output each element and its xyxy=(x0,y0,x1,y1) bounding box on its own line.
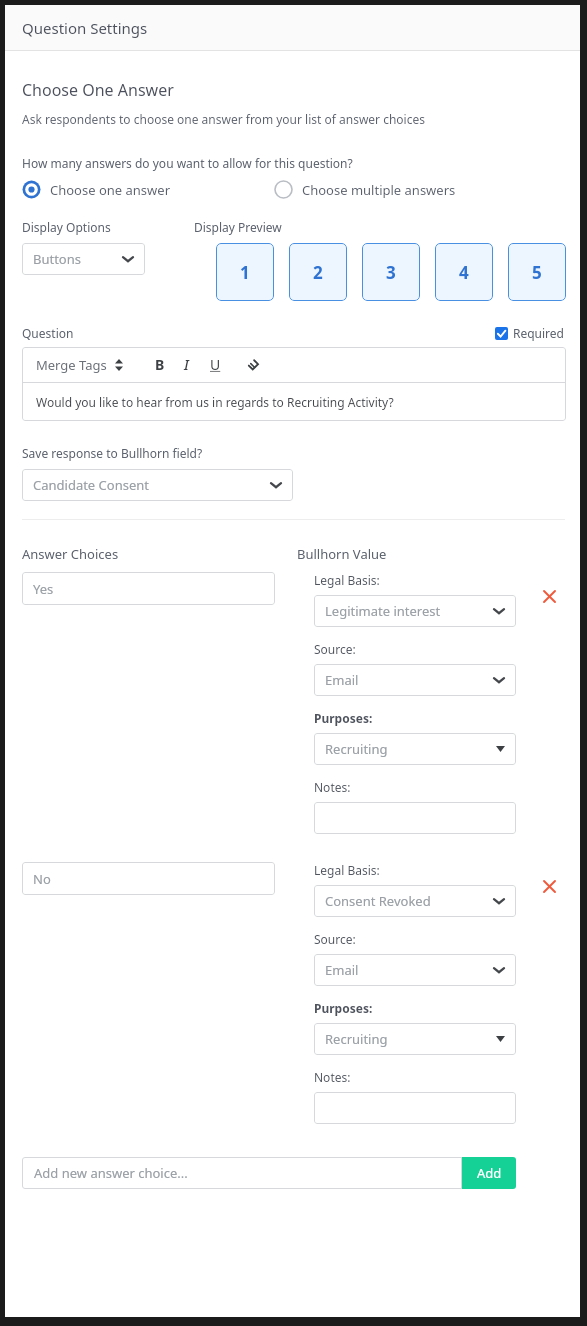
staticText: Source: xyxy=(314,931,356,947)
staticText: Choose multiple answers xyxy=(302,181,456,199)
staticText: 5 xyxy=(532,261,542,284)
staticText: Add new answer choice... xyxy=(34,1164,188,1182)
staticText: Yes xyxy=(33,580,54,598)
staticText: Required xyxy=(513,325,564,341)
staticText: Source: xyxy=(314,641,356,657)
staticText: Consent Revoked xyxy=(325,892,431,910)
staticText: 3 xyxy=(386,261,396,284)
button[interactable]: Bold xyxy=(151,355,169,374)
button[interactable]: Source xyxy=(314,664,516,696)
staticText: Recruiting xyxy=(325,740,388,758)
button[interactable]: 5 xyxy=(508,243,566,301)
staticText: Purposes: xyxy=(314,710,373,726)
staticText: Display Options xyxy=(22,219,111,235)
staticText: Recruiting xyxy=(325,1030,388,1048)
staticText: Purposes: xyxy=(314,1000,373,1016)
button[interactable]: Legal basis xyxy=(314,595,516,627)
staticText: Email xyxy=(325,961,359,979)
button[interactable]: Bullhorn field xyxy=(22,469,293,501)
button[interactable]: Source xyxy=(314,954,516,986)
staticText: Question Settings xyxy=(22,18,148,38)
button[interactable]: Purposes xyxy=(314,1023,516,1055)
button[interactable]: Merge Tags xyxy=(36,356,123,374)
staticText: Display Preview xyxy=(194,219,282,235)
staticText: No xyxy=(33,870,51,888)
button[interactable]: Remove answer choice xyxy=(539,876,559,896)
staticText: Email xyxy=(325,671,359,689)
button[interactable]: Legal basis xyxy=(314,885,516,917)
button[interactable]: Notes xyxy=(314,802,516,834)
staticText: Add xyxy=(477,1164,502,1182)
button[interactable]: Choose one answer xyxy=(22,180,171,199)
button[interactable]: Italic xyxy=(180,355,193,374)
staticText: Ask respondents to choose one answer fro… xyxy=(22,111,425,127)
button[interactable]: Would you like to hear from us in regard… xyxy=(22,383,566,421)
staticText: Bullhorn Value xyxy=(297,545,387,563)
button[interactable]: Add xyxy=(462,1157,516,1189)
button[interactable]: Display options xyxy=(22,243,145,275)
button[interactable]: Choose multiple answers xyxy=(274,180,456,199)
button[interactable]: Required xyxy=(495,325,564,341)
staticText: Question xyxy=(22,325,74,341)
staticText: Legal Basis: xyxy=(314,862,380,878)
staticText: B xyxy=(155,355,165,374)
staticText: U xyxy=(210,355,221,374)
button[interactable]: Add new answer choice... xyxy=(22,1157,462,1189)
staticText: Would you like to hear from us in regard… xyxy=(36,394,394,410)
staticText: Candidate Consent xyxy=(33,476,149,494)
staticText: Buttons xyxy=(33,250,81,268)
staticText: Save response to Bullhorn field? xyxy=(22,445,203,461)
button[interactable]: Underline xyxy=(206,355,225,374)
button[interactable]: 4 xyxy=(435,243,493,301)
button[interactable]: Notes xyxy=(314,1092,516,1124)
staticText: How many answers do you want to allow fo… xyxy=(22,155,353,171)
button[interactable]: Answer choice Yes xyxy=(22,572,275,605)
staticText: Merge Tags xyxy=(36,356,107,374)
staticText: 2 xyxy=(313,261,323,284)
button[interactable]: Purposes xyxy=(314,733,516,765)
button[interactable]: 2 xyxy=(289,243,347,301)
staticText: Legal Basis: xyxy=(314,572,380,588)
staticText: I xyxy=(184,355,189,374)
staticText: Choose One Answer xyxy=(22,79,174,101)
button[interactable]: Answer choice No xyxy=(22,862,275,895)
button[interactable]: Insert link xyxy=(243,358,263,372)
button[interactable]: Remove answer choice xyxy=(539,586,559,606)
staticText: 1 xyxy=(240,261,250,284)
staticText: Legitimate interest xyxy=(325,602,441,620)
button[interactable]: 1 xyxy=(216,243,274,301)
staticText: 4 xyxy=(459,261,469,284)
staticText: Answer Choices xyxy=(22,545,119,563)
staticText: Notes: xyxy=(314,1069,351,1085)
staticText: Notes: xyxy=(314,779,351,795)
button[interactable]: 3 xyxy=(362,243,420,301)
staticText: Choose one answer xyxy=(50,181,171,199)
